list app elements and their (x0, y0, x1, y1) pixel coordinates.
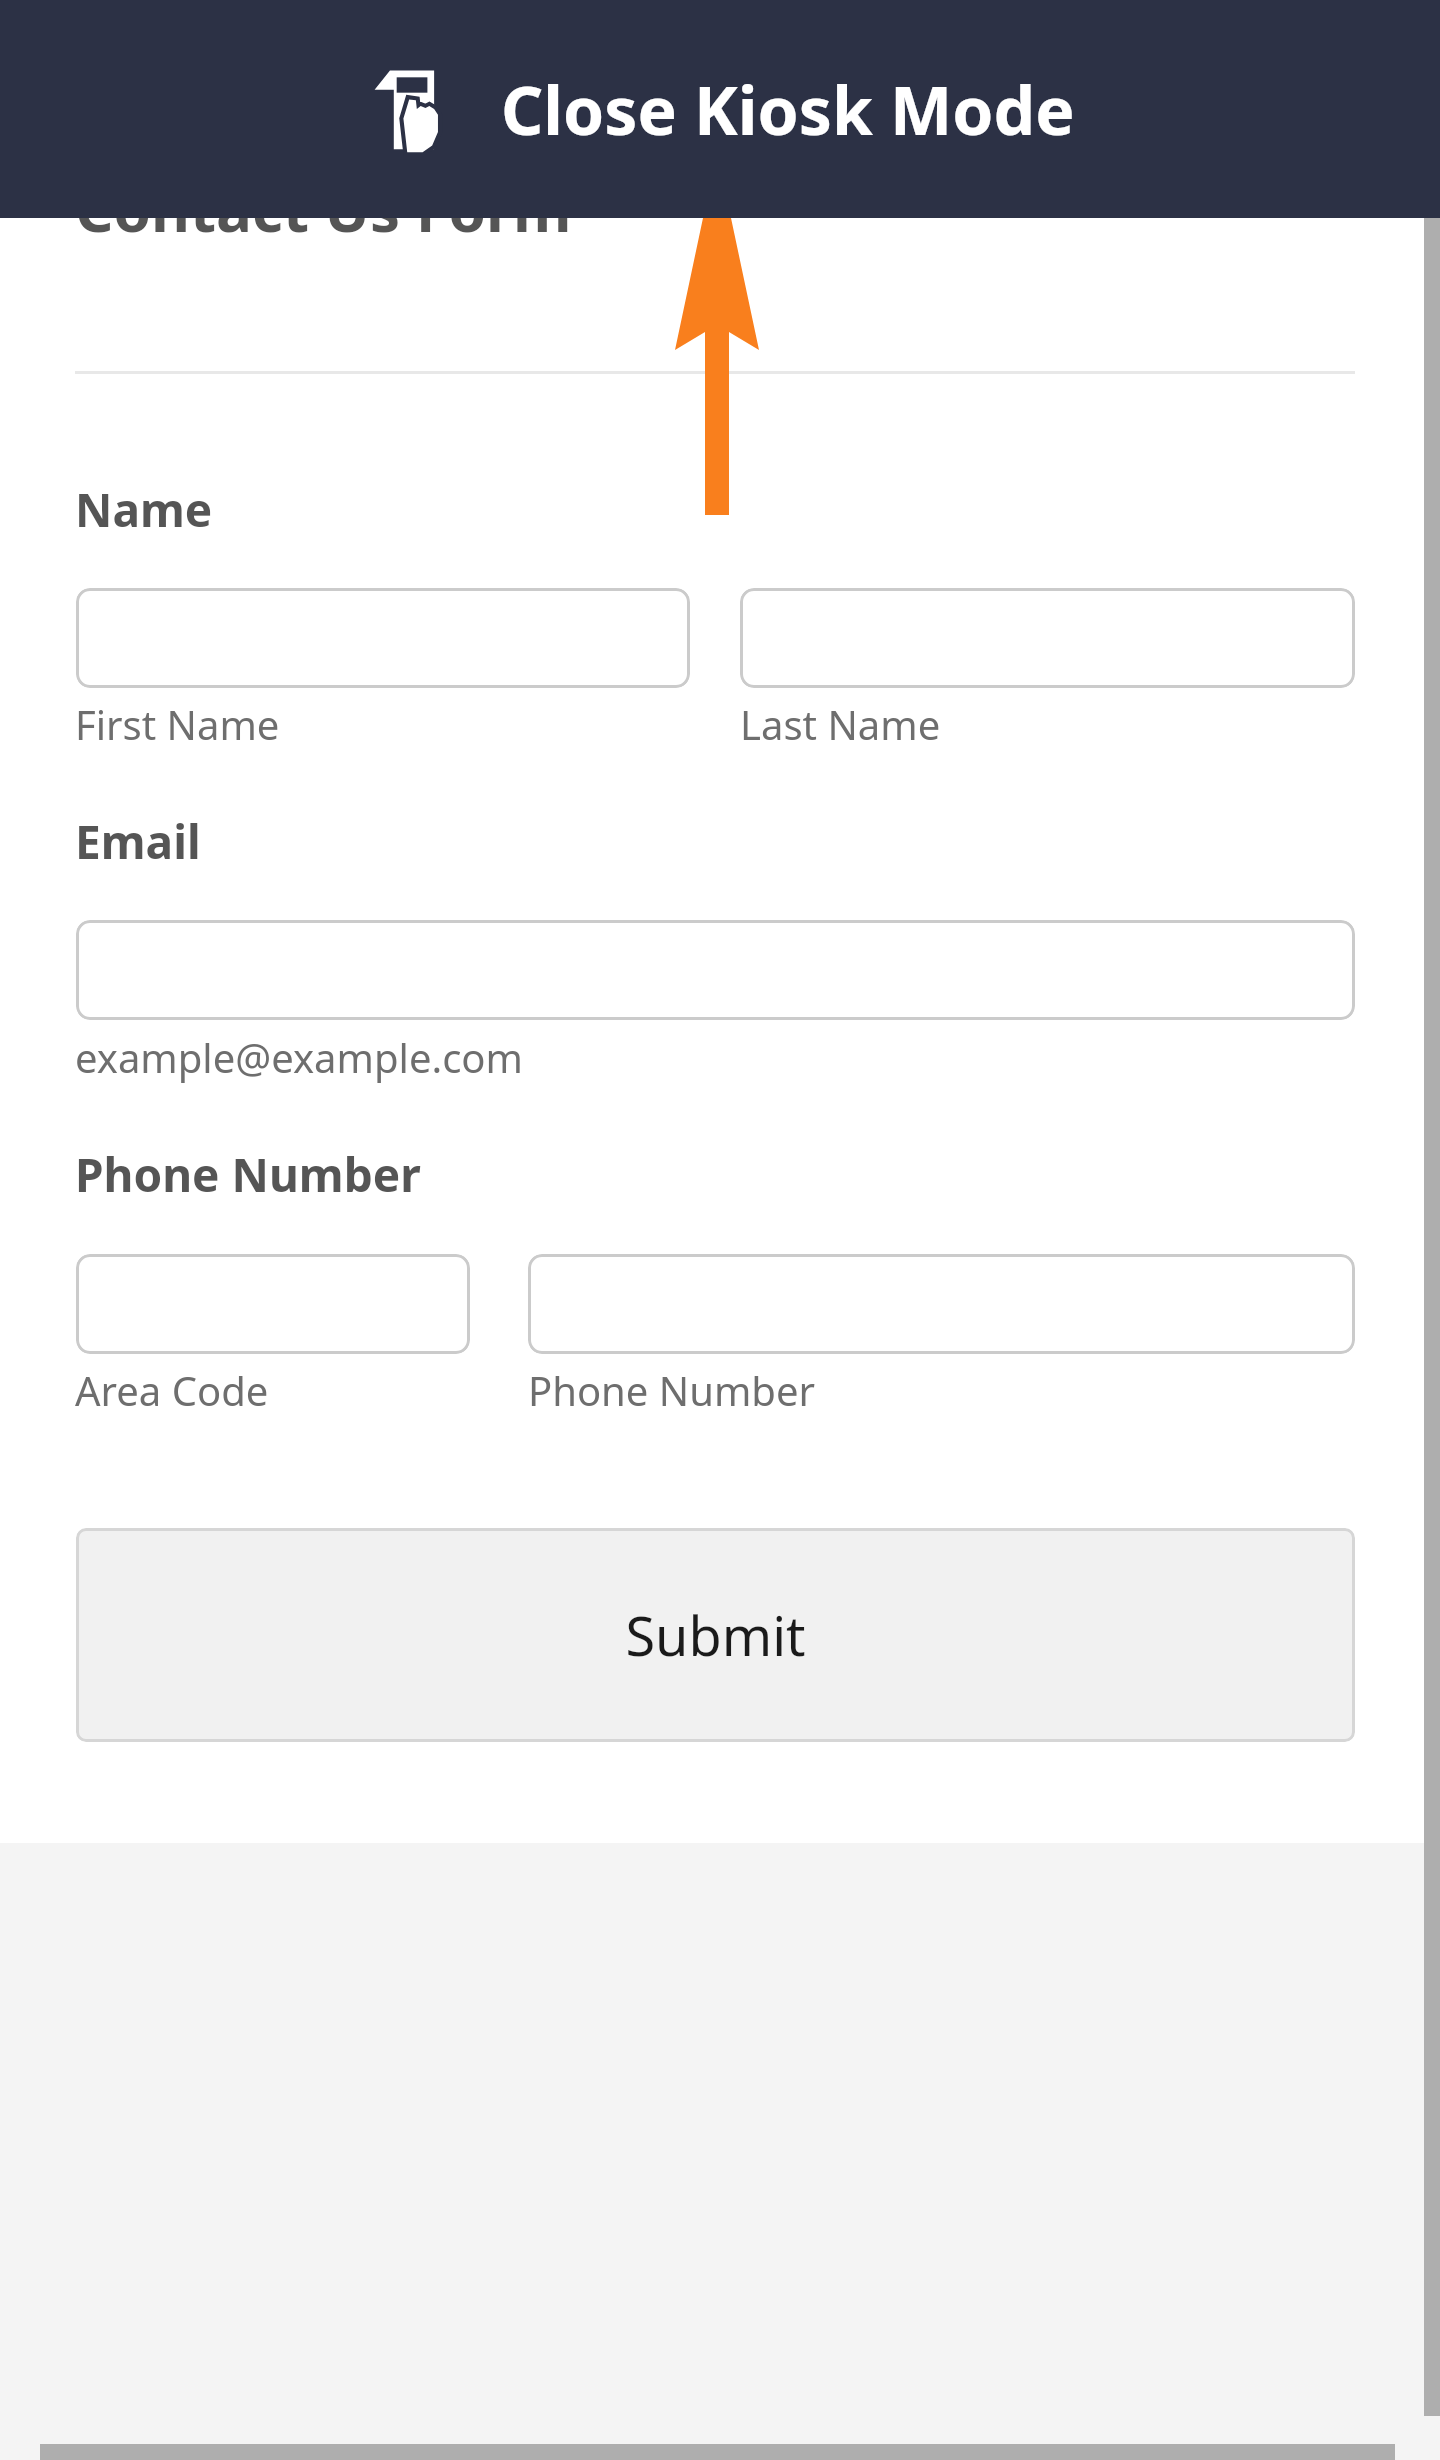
staticText: Name (75, 478, 213, 541)
button[interactable]: Submit (76, 1528, 1355, 1742)
staticText: Last Name (740, 697, 941, 751)
staticText: Phone Number (528, 1363, 815, 1417)
staticText: Phone Number (75, 1143, 421, 1206)
button[interactable]: Close Kiosk Mode (0, 0, 1440, 218)
staticText: First Name (75, 697, 280, 751)
staticText: Email (75, 810, 201, 873)
staticText: Submit (625, 1598, 806, 1672)
button[interactable] (740, 588, 1355, 688)
staticText: example@example.com (75, 1030, 523, 1084)
button[interactable] (528, 1254, 1355, 1354)
staticText: Area Code (75, 1363, 269, 1417)
button[interactable] (76, 588, 690, 688)
button[interactable] (76, 920, 1355, 1020)
staticText: Close Kiosk Mode (501, 64, 1075, 154)
button[interactable] (76, 1254, 470, 1354)
staticText: Contact Us Form (75, 168, 572, 250)
